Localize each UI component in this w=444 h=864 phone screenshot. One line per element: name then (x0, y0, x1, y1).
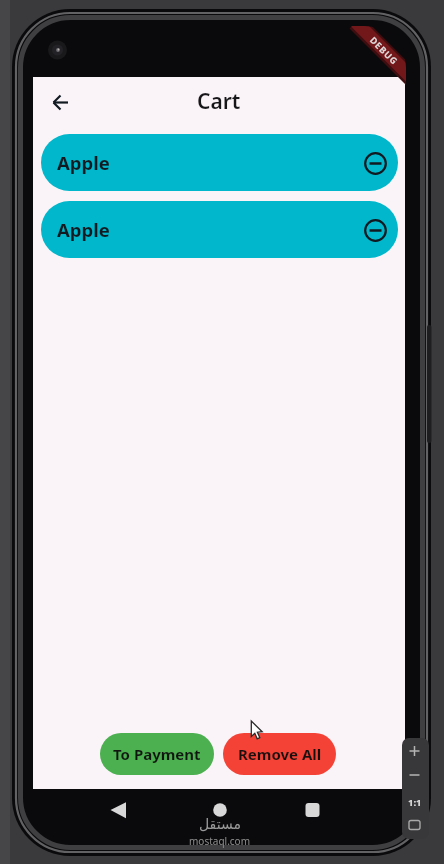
staticText: 1:1 (408, 796, 422, 809)
button[interactable] (208, 798, 232, 822)
button[interactable]: Apple (41, 134, 398, 191)
button[interactable] (300, 798, 324, 822)
staticText: Apple (57, 217, 110, 242)
staticText: Apple (57, 150, 110, 175)
button[interactable] (402, 814, 429, 838)
staticText: mostaql.com (189, 834, 251, 848)
staticText: DEBUG (368, 34, 401, 67)
button[interactable] (353, 141, 397, 185)
staticText: Remove All (238, 744, 322, 764)
button[interactable] (402, 790, 429, 813)
button[interactable]: To Payment (100, 733, 214, 775)
button[interactable] (402, 739, 429, 763)
button[interactable] (402, 764, 429, 787)
button[interactable]: Remove All (223, 733, 336, 775)
staticText: Cart (197, 87, 241, 116)
button[interactable] (353, 208, 397, 252)
button[interactable] (106, 798, 130, 822)
staticText: مستقل (199, 816, 241, 832)
button[interactable] (49, 91, 71, 113)
button[interactable]: Apple (41, 201, 398, 258)
staticText: To Payment (113, 744, 201, 764)
